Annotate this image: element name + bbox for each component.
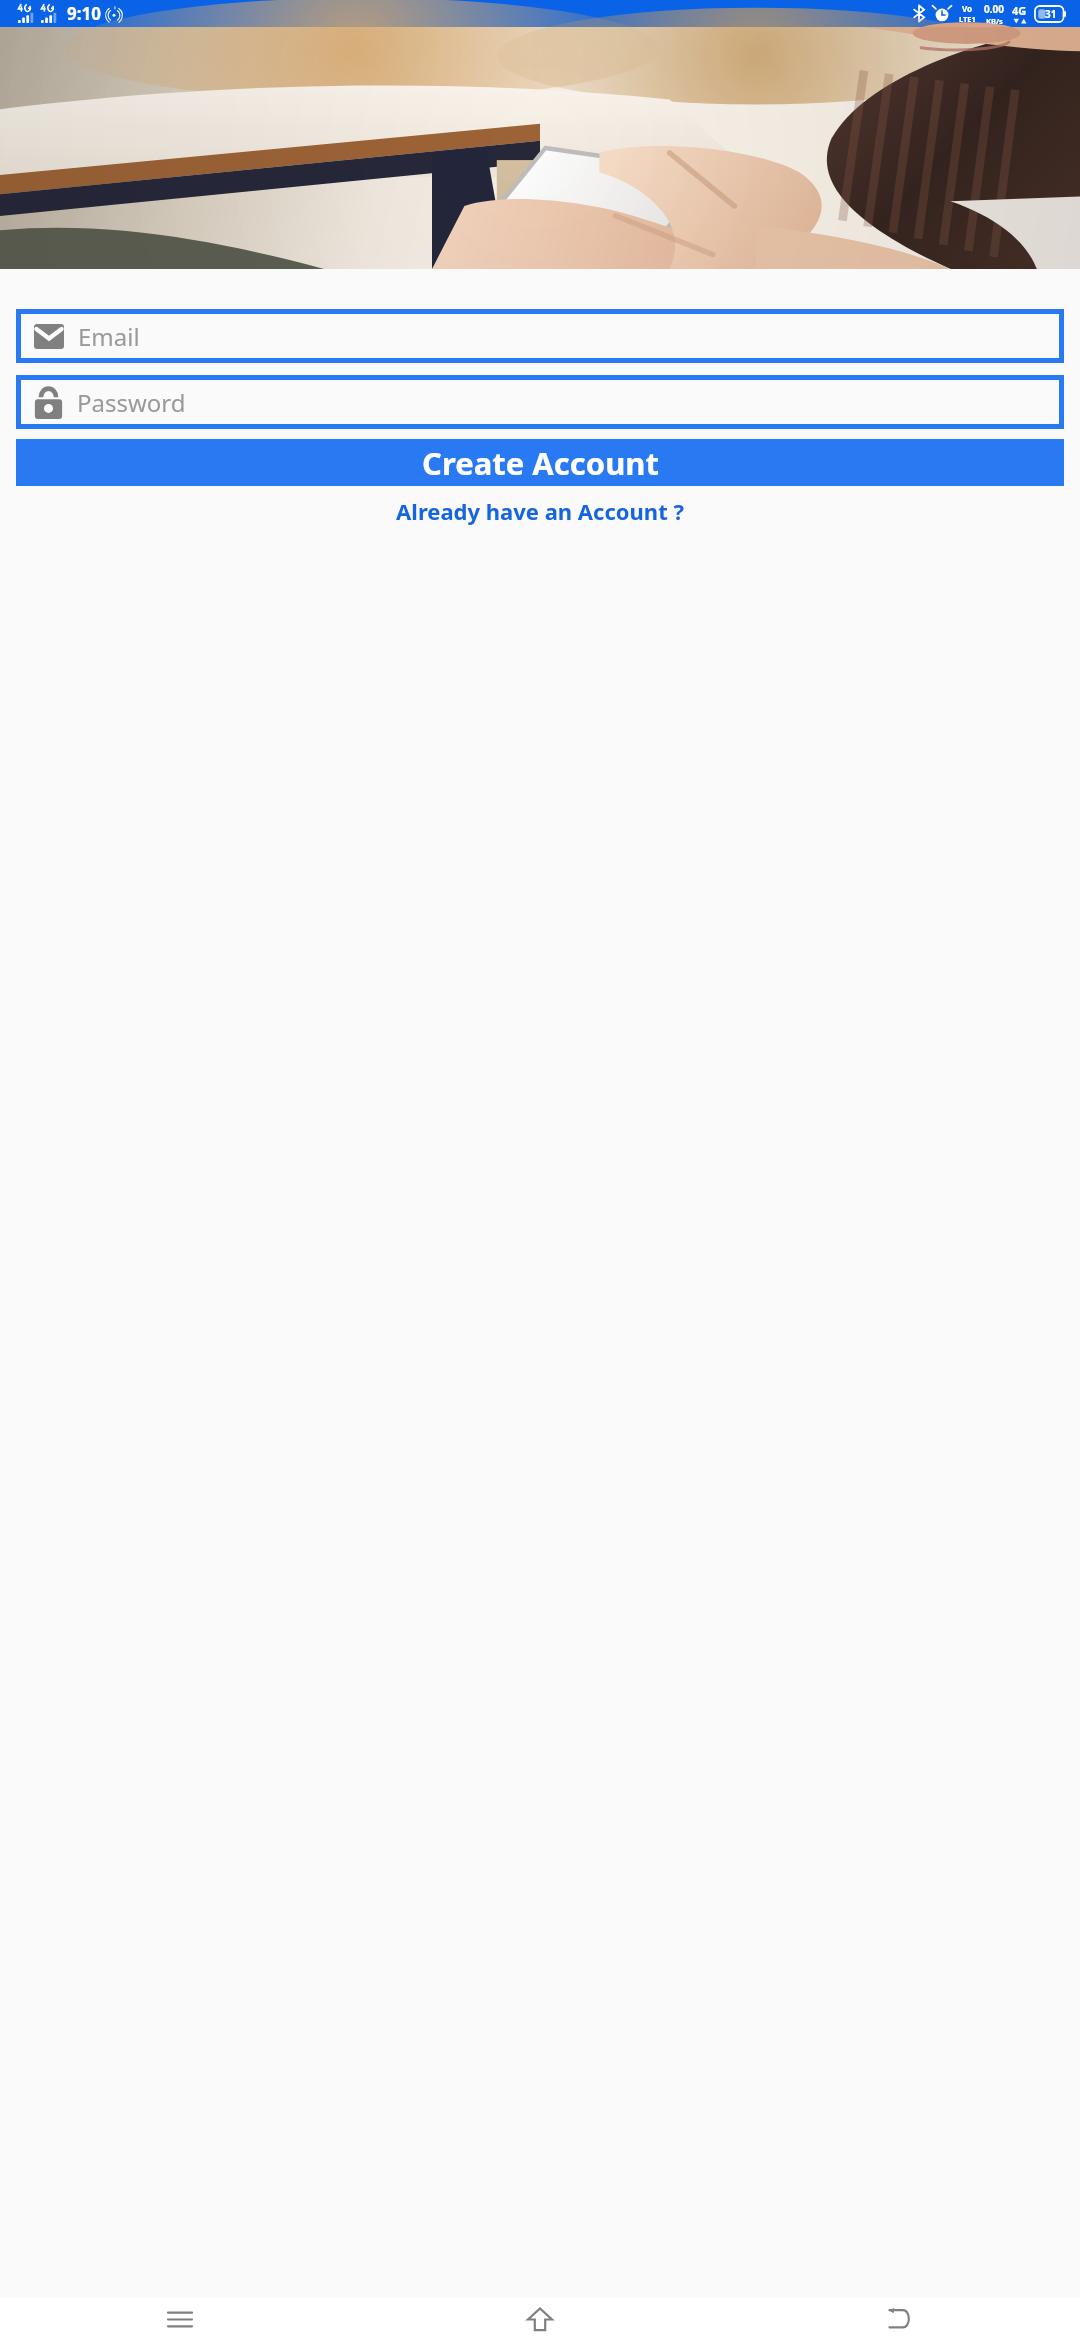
staticText: 31 — [1045, 7, 1057, 21]
other: Password — [34, 386, 63, 419]
other: Email — [34, 324, 64, 349]
button[interactable]: Back — [720, 2298, 1080, 2340]
button[interactable]: Password — [21, 380, 1059, 424]
staticText: Password — [77, 386, 186, 419]
button[interactable]: Recent apps — [0, 2298, 360, 2340]
staticText: LTE1 — [959, 14, 976, 24]
button[interactable]: Create Account — [16, 439, 1064, 486]
staticText: 0.00 — [984, 2, 1004, 16]
button[interactable]: Home — [360, 2298, 720, 2340]
staticText: 4G — [1012, 3, 1027, 18]
button[interactable]: Email — [21, 314, 1059, 358]
staticText: Already have an Account ? — [396, 496, 684, 526]
staticText: KB/s — [986, 16, 1003, 26]
staticText: Email — [78, 320, 140, 353]
staticText: Vo — [962, 3, 973, 14]
button[interactable]: Already have an Account ? — [0, 494, 1080, 528]
staticText: Create Account — [422, 442, 659, 484]
staticText: 9:10 — [67, 2, 101, 25]
